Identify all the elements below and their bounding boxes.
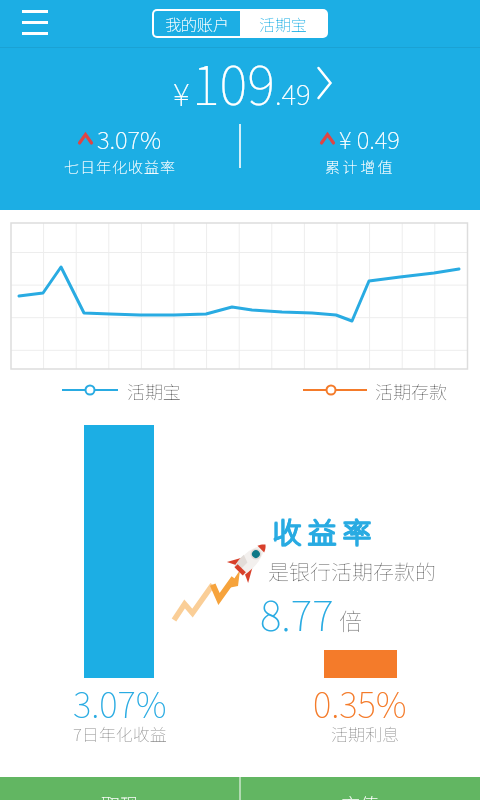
button[interactable]: ¥ [173,44,332,121]
button[interactable] [16,4,56,42]
staticText: 取现 [101,790,140,800]
staticText: 收益率 [272,509,378,551]
button[interactable]: 我的账户 [154,11,240,36]
staticText: 充值 [341,790,380,800]
staticText: 收益率 [272,510,378,552]
staticText: 8.77 [260,583,334,642]
button[interactable]: 取现 [0,777,240,800]
button[interactable]: 充值 [240,777,480,800]
staticText: 3.07% [97,121,162,156]
staticText: 收益率 [273,510,379,552]
staticText: 活期存款 [375,378,447,404]
staticText: 活期利息 [331,721,399,746]
button[interactable]: 活期宝 [240,11,326,36]
staticText: 是银行活期存款的 [268,556,436,586]
staticText: 7日年化收益 [73,721,167,746]
staticText: 倍 [339,603,362,636]
staticText: .49 [275,73,311,114]
staticText: 我的账户 [165,12,230,35]
staticText: 109 [192,44,275,121]
staticText: 0.35% [313,677,407,728]
staticText: 七日年化收益率 [64,156,177,178]
staticText: ¥ [173,69,190,115]
staticText: ¥ 0.49 [339,121,400,156]
staticText: 3.07% [73,677,167,728]
staticText: 活期宝 [127,378,181,404]
staticText: 收益率 [273,509,379,551]
staticText: 活期宝 [259,12,308,35]
staticText: 累计增值 [325,156,396,178]
